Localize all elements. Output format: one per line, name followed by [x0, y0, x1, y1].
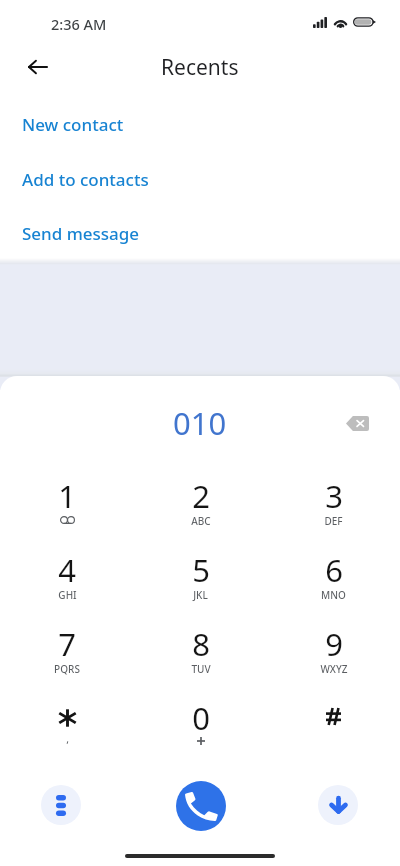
staticText: MNO [321, 588, 346, 602]
staticText: 0 [192, 697, 210, 739]
staticText: 7 [58, 623, 76, 665]
button[interactable]: 1 [0, 459, 134, 533]
staticText: Send message [22, 222, 140, 245]
staticText: Add to contacts [22, 168, 149, 191]
button[interactable]: 0 [134, 681, 267, 755]
staticText: TUV [191, 662, 211, 676]
button[interactable]: Backspace [336, 402, 378, 444]
staticText: 3 [325, 475, 343, 517]
staticText: 9 [325, 623, 343, 665]
staticText: New contact [22, 113, 124, 136]
staticText: WXYZ [320, 662, 348, 676]
button[interactable]: Hide keypad [318, 785, 358, 825]
staticText: 1 [58, 475, 76, 517]
button[interactable]: 5 [134, 533, 267, 607]
staticText: 5 [192, 549, 210, 591]
staticText: DEF [324, 514, 343, 528]
button[interactable]: 3 [267, 459, 400, 533]
button[interactable]: 2 [134, 459, 267, 533]
button[interactable] [267, 681, 400, 755]
button[interactable]: 7 [0, 607, 134, 681]
staticText: , [66, 732, 69, 746]
button[interactable]: 9 [267, 607, 400, 681]
button[interactable]: Send message [0, 213, 400, 253]
button[interactable]: Back [16, 46, 60, 90]
staticText: 6 [325, 549, 343, 591]
staticText: 2:36 AM [51, 14, 107, 34]
staticText: Recents [161, 53, 239, 82]
button[interactable]: Add to contacts [0, 159, 400, 199]
button[interactable]: New contact [0, 104, 400, 144]
staticText: ABC [191, 514, 211, 528]
staticText: GHI [58, 588, 77, 602]
button[interactable]: 4 [0, 533, 134, 607]
staticText: 8 [192, 623, 210, 665]
staticText: JKL [193, 588, 208, 602]
button[interactable]: , [0, 681, 134, 755]
button[interactable]: 6 [267, 533, 400, 607]
staticText: 4 [58, 549, 76, 591]
staticText: 010 [173, 402, 227, 444]
staticText: PQRS [54, 662, 80, 676]
button[interactable]: Call [176, 781, 226, 831]
button[interactable]: 8 [134, 607, 267, 681]
staticText: 2 [192, 475, 210, 517]
button[interactable]: More options [41, 785, 81, 825]
